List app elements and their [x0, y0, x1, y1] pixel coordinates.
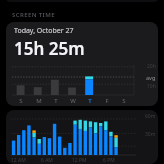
staticText: S	[122, 97, 126, 105]
staticText: 6 AM	[41, 157, 53, 164]
button[interactable]: Today, October 27	[6, 22, 158, 106]
staticText: 15h 25m	[14, 37, 85, 60]
staticText: T	[88, 97, 92, 105]
staticText: F	[105, 97, 109, 105]
staticText: W	[70, 97, 76, 105]
staticText: 12 PM	[72, 157, 87, 164]
staticText: 30m	[145, 131, 156, 138]
staticText: S	[19, 97, 23, 105]
staticText: 6 PM	[103, 157, 115, 164]
button[interactable]: Hourly screen time chart	[6, 110, 158, 164]
staticText: 10h	[147, 83, 156, 90]
staticText: SCREEN TIME	[12, 11, 55, 19]
staticText: avg	[146, 74, 156, 81]
staticText: T	[54, 97, 58, 105]
staticText: 60m	[145, 113, 156, 120]
staticText: M	[36, 97, 42, 105]
staticText: 20h	[147, 63, 156, 70]
staticText: 12 AM	[11, 157, 26, 164]
staticText: Today, October 27	[14, 26, 74, 36]
